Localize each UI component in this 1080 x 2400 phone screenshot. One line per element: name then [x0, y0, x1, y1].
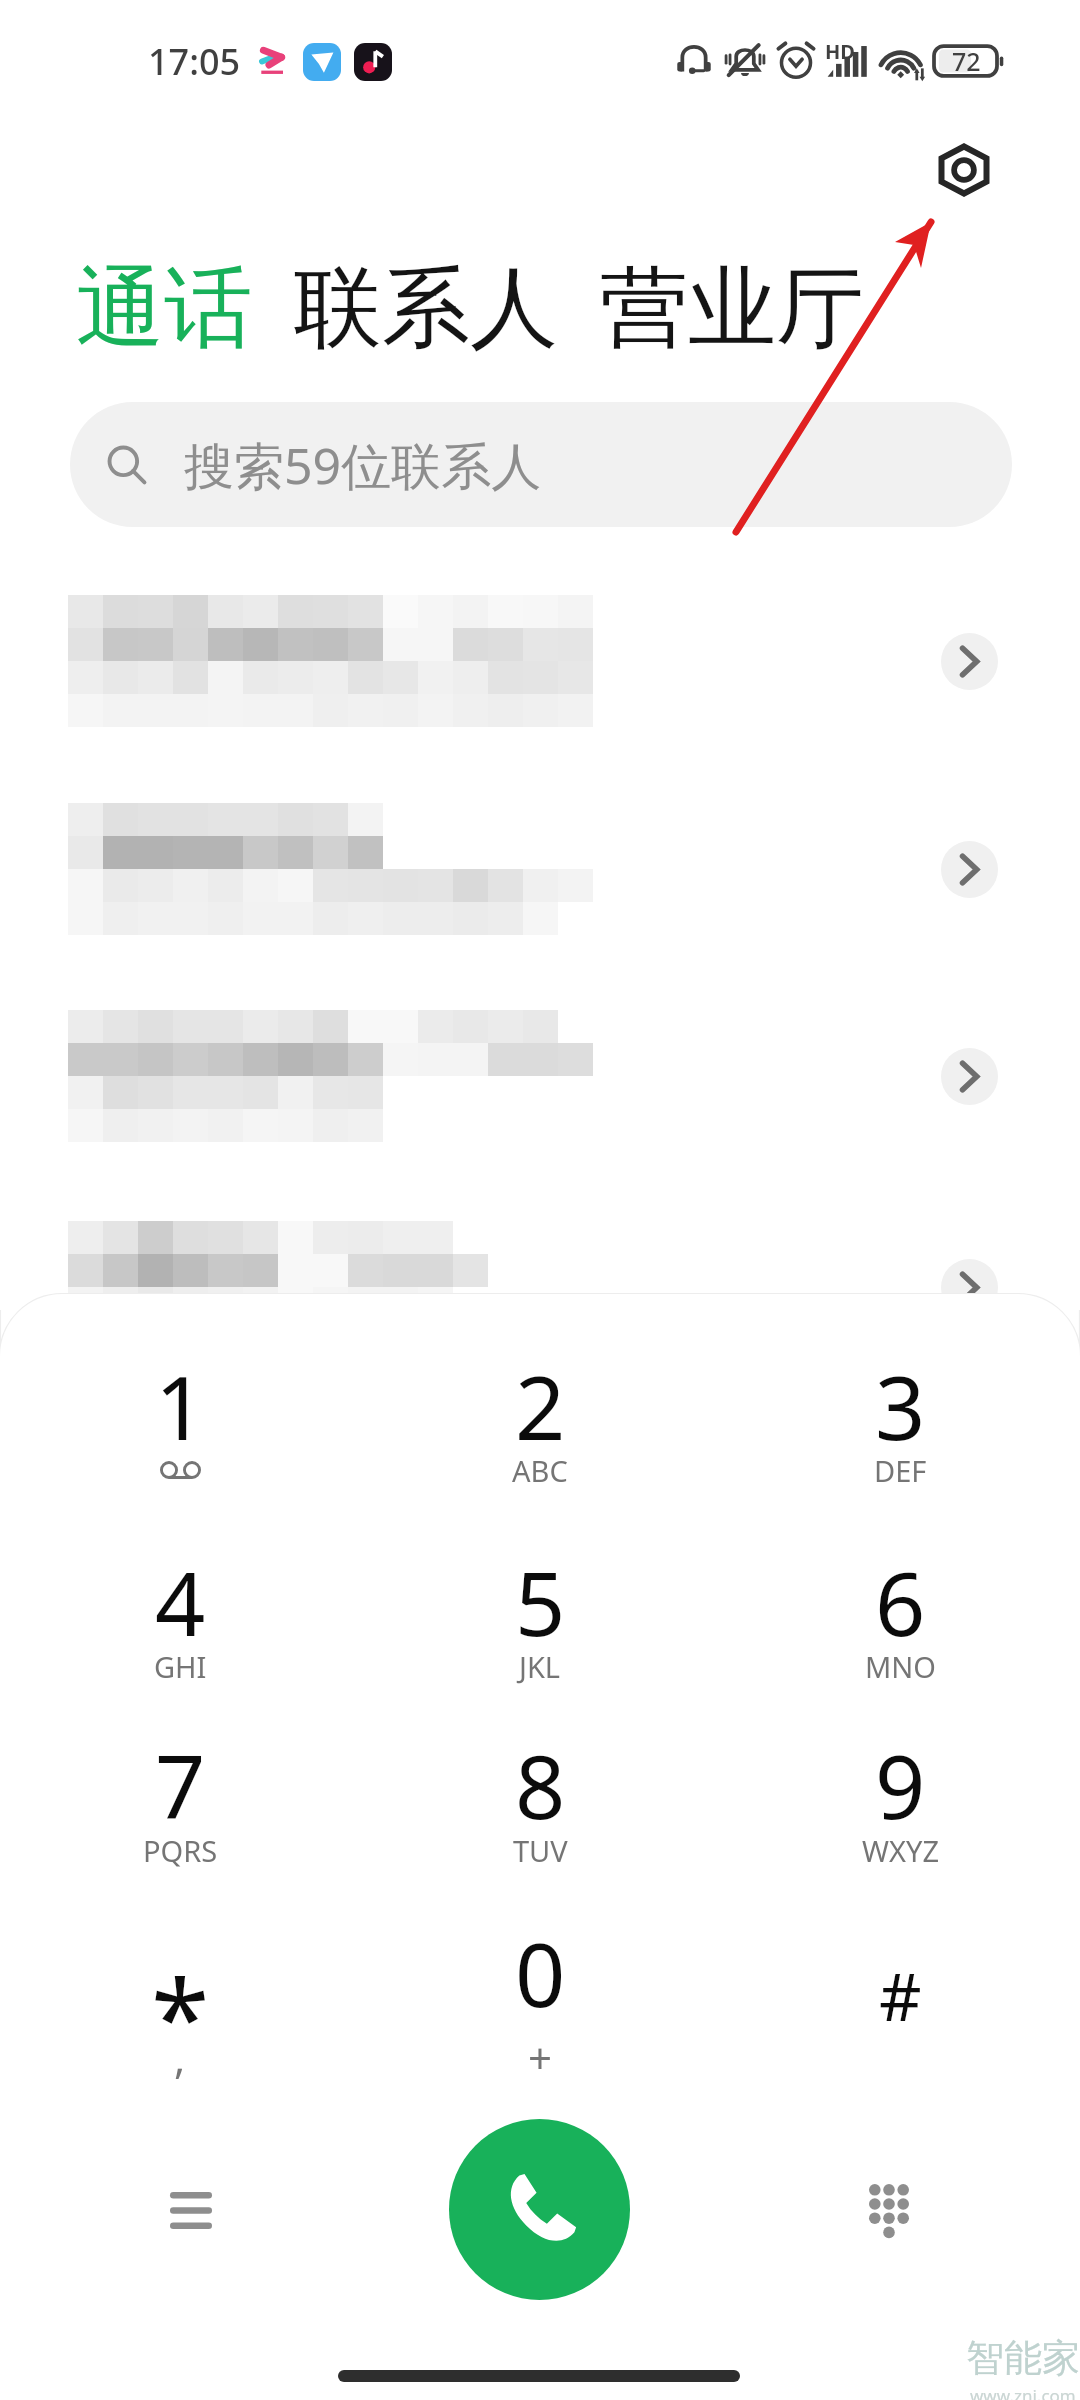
button[interactable]: 通话: [70, 243, 258, 374]
staticText: ,: [174, 2029, 186, 2086]
button[interactable]: #: [780, 1881, 1020, 2065]
staticText: DEF: [874, 1451, 927, 1490]
button[interactable]: 6: [780, 1510, 1020, 1694]
staticText: 8: [515, 1725, 566, 1845]
staticText: MNO: [865, 1647, 936, 1686]
staticText: *: [151, 1944, 210, 2088]
staticText: 7: [155, 1725, 206, 1845]
button[interactable]: Open call details: [941, 633, 998, 690]
staticText: 搜索59位联系人: [184, 431, 542, 499]
button[interactable]: 0: [420, 1881, 660, 2065]
button[interactable]: Open call details: [941, 841, 998, 898]
staticText: HD: [825, 38, 855, 65]
staticText: 智能家: [966, 2334, 1080, 2382]
staticText: 4: [155, 1542, 206, 1662]
button[interactable]: 搜索59位联系人: [70, 402, 1012, 527]
staticText: 72: [952, 44, 981, 78]
staticText: 0: [515, 1913, 566, 2033]
button[interactable]: Open call details: [0, 1181, 1080, 1381]
button[interactable]: Call history: [148, 2167, 234, 2253]
button[interactable]: Open call details: [0, 970, 1080, 1170]
staticText: PQRS: [143, 1831, 218, 1870]
staticText: 3: [875, 1346, 926, 1466]
button[interactable]: 7: [60, 1693, 300, 1877]
button[interactable]: 1: [60, 1314, 300, 1498]
button[interactable]: 2: [420, 1314, 660, 1498]
staticText: +: [528, 2029, 553, 2086]
staticText: 9: [875, 1725, 926, 1845]
button[interactable]: 9: [780, 1693, 1020, 1877]
staticText: www.znj.com: [970, 2384, 1076, 2400]
staticText: WXYZ: [862, 1831, 939, 1870]
button[interactable]: 4: [60, 1510, 300, 1694]
button[interactable]: Dialpad: [846, 2166, 932, 2252]
staticText: JKL: [519, 1647, 561, 1686]
staticText: 1: [155, 1346, 206, 1466]
button[interactable]: 联系人: [288, 243, 564, 374]
button[interactable]: Call: [449, 2119, 630, 2300]
staticText: GHI: [154, 1647, 207, 1686]
button[interactable]: *: [60, 1881, 300, 2065]
button[interactable]: 8: [420, 1693, 660, 1877]
staticText: 联系人: [294, 253, 558, 364]
staticText: 营业厅: [600, 253, 864, 364]
staticText: #: [879, 1950, 922, 2040]
staticText: 17:05: [148, 37, 241, 86]
staticText: TUV: [513, 1831, 568, 1870]
staticText: 5: [515, 1542, 566, 1662]
staticText: 2: [515, 1346, 566, 1466]
button[interactable]: Open call details: [941, 1259, 998, 1316]
button[interactable]: 营业厅: [594, 243, 870, 374]
button[interactable]: Open call details: [0, 555, 1080, 755]
button[interactable]: Open call details: [941, 1048, 998, 1105]
button[interactable]: Open call details: [0, 763, 1080, 963]
staticText: 通话: [76, 253, 252, 364]
button[interactable]: 3: [780, 1314, 1020, 1498]
button[interactable]: Settings: [918, 124, 1010, 216]
staticText: 6: [875, 1542, 926, 1662]
button[interactable]: 5: [420, 1510, 660, 1694]
staticText: ABC: [512, 1451, 568, 1490]
